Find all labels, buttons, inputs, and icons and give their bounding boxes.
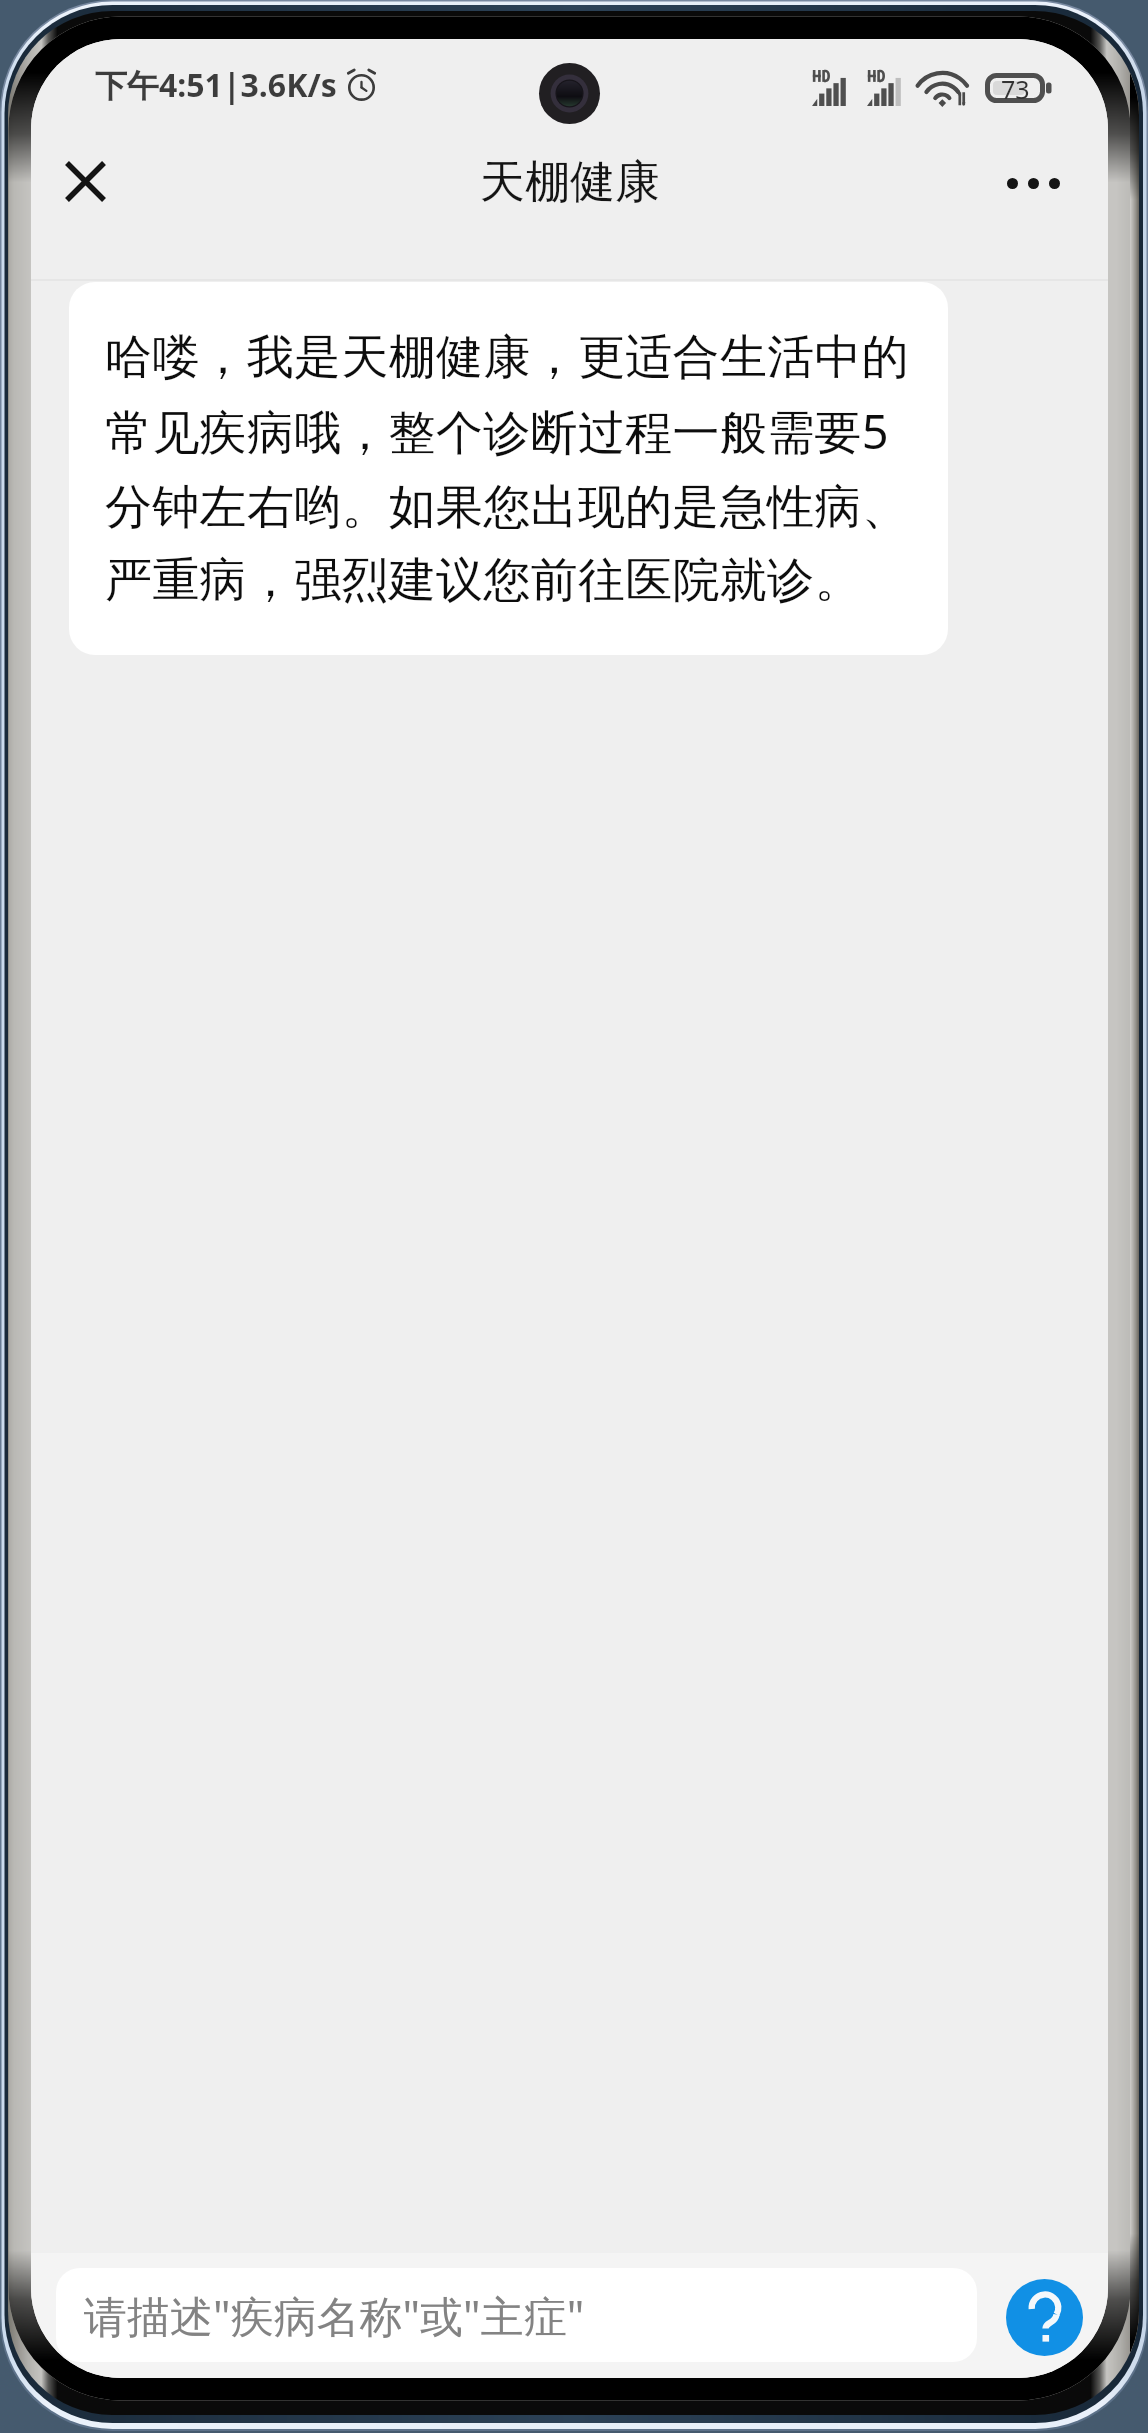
button[interactable]: 请描述"疾病名称"或"主症" <box>56 2268 977 2362</box>
staticText: 下午4:51|3.6K/s <box>95 63 337 107</box>
staticText: 请描述"疾病名称"或"主症" <box>84 2286 585 2345</box>
button[interactable]: 哈喽，我是天棚健康，更适合生活中的常见疾病哦，整个诊断过程一般需要5分钟左右哟。… <box>69 282 948 655</box>
button[interactable]: More options <box>989 139 1077 227</box>
staticText: 天棚健康 <box>480 154 660 211</box>
staticText: 73 <box>1001 72 1030 102</box>
button[interactable]: Help <box>1006 2279 1083 2356</box>
button[interactable]: Close <box>41 137 129 225</box>
staticText: 哈喽，我是天棚健康，更适合生活中的常见疾病哦，整个诊断过程一般需要5分钟左右哟。… <box>105 328 918 609</box>
